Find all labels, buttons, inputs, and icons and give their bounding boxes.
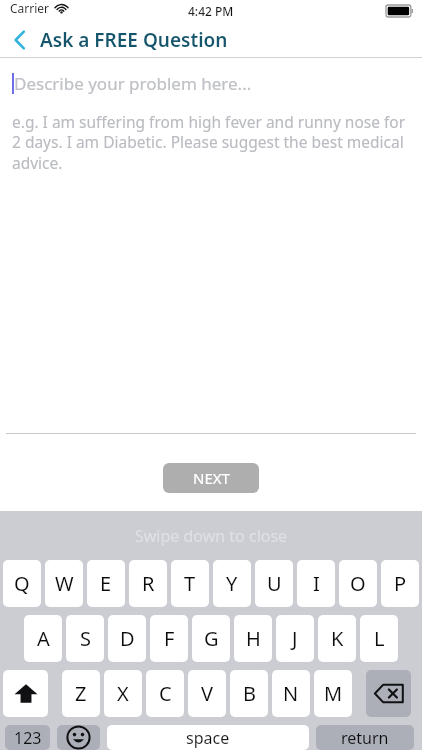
staticText: NEXT <box>193 468 230 488</box>
staticText: W <box>55 570 74 597</box>
staticText: S <box>80 625 91 652</box>
button[interactable]: K <box>318 615 356 662</box>
button[interactable]: E <box>87 560 125 607</box>
staticText: I <box>313 570 320 597</box>
button[interactable]: space <box>107 725 309 750</box>
button[interactable]: N <box>272 670 310 717</box>
staticText: 4:42 PM <box>188 3 234 19</box>
staticText: Q <box>14 570 30 597</box>
staticText: Ask a FREE Question <box>40 27 228 53</box>
button[interactable]: R <box>129 560 167 607</box>
button[interactable]: D <box>108 615 146 662</box>
staticText: M <box>324 680 343 707</box>
button[interactable]: 123 <box>5 725 50 750</box>
staticText: J <box>292 625 298 652</box>
staticText: X <box>117 680 129 707</box>
button[interactable]: Shift <box>3 670 48 717</box>
staticText: A <box>37 625 50 652</box>
staticText: B <box>243 680 256 707</box>
staticText: 123 <box>14 727 42 749</box>
staticText: R <box>142 570 155 597</box>
button[interactable]: W <box>45 560 83 607</box>
staticText: Describe your problem here... <box>14 72 252 95</box>
staticText: return <box>341 727 389 749</box>
button[interactable]: F <box>150 615 188 662</box>
button[interactable]: V <box>188 670 226 717</box>
button[interactable]: Q <box>3 560 41 607</box>
staticText: H <box>246 625 261 652</box>
button[interactable]: O <box>339 560 377 607</box>
button[interactable]: X <box>104 670 142 717</box>
staticText: K <box>331 625 344 652</box>
button[interactable]: NEXT <box>163 463 259 493</box>
button[interactable]: I <box>297 560 335 607</box>
staticText: Y <box>226 570 238 597</box>
staticText: O <box>350 570 366 597</box>
staticText: U <box>267 570 282 597</box>
staticText: space <box>186 727 230 749</box>
button[interactable]: Emoji <box>57 725 100 750</box>
button[interactable]: J <box>276 615 314 662</box>
button[interactable]: P <box>381 560 419 607</box>
staticText: F <box>164 625 175 652</box>
button[interactable]: Z <box>62 670 100 717</box>
staticText: D <box>120 625 135 652</box>
staticText: E <box>100 570 112 597</box>
staticText: C <box>159 680 172 707</box>
staticText: V <box>201 680 213 707</box>
staticText: G <box>204 625 219 652</box>
button[interactable]: H <box>234 615 272 662</box>
button[interactable]: Y <box>213 560 251 607</box>
staticText: Z <box>75 680 87 707</box>
staticText: T <box>184 570 196 597</box>
staticText: L <box>374 625 385 652</box>
button[interactable]: U <box>255 560 293 607</box>
button[interactable]: Backspace <box>366 670 411 717</box>
button[interactable]: S <box>66 615 104 662</box>
button[interactable]: Back <box>0 22 40 58</box>
staticText: Swipe down to close <box>135 525 288 547</box>
staticText: P <box>394 570 407 597</box>
button[interactable]: L <box>360 615 398 662</box>
button[interactable]: B <box>230 670 268 717</box>
button[interactable]: T <box>171 560 209 607</box>
button[interactable]: A <box>24 615 62 662</box>
staticText: e.g. I am suffering from high fever and … <box>12 111 408 174</box>
button[interactable]: M <box>314 670 352 717</box>
staticText: Carrier <box>10 0 50 16</box>
staticText: N <box>283 680 299 707</box>
button[interactable]: return <box>316 725 414 750</box>
button[interactable]: G <box>192 615 230 662</box>
button[interactable]: C <box>146 670 184 717</box>
